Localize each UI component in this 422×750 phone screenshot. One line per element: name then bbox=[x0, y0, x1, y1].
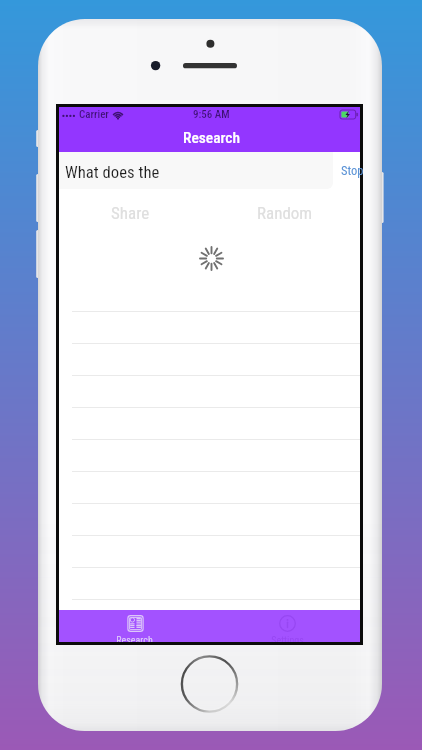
staticText: Random bbox=[257, 203, 313, 223]
button[interactable] bbox=[59, 535, 360, 567]
staticText: Settings bbox=[271, 635, 304, 642]
button[interactable] bbox=[59, 599, 360, 631]
button[interactable]: Stop bbox=[330, 152, 360, 189]
button[interactable] bbox=[59, 375, 360, 407]
button[interactable] bbox=[59, 471, 360, 503]
staticText: 9:56 AM bbox=[193, 108, 230, 121]
button[interactable]: Share bbox=[59, 189, 209, 236]
staticText: What does the bbox=[65, 163, 160, 183]
button[interactable] bbox=[59, 503, 360, 535]
staticText: Carrier bbox=[79, 108, 109, 121]
button[interactable] bbox=[59, 439, 360, 471]
button[interactable]: What does the bbox=[59, 152, 333, 189]
staticText: Research bbox=[183, 129, 241, 147]
staticText: Research bbox=[116, 635, 153, 642]
button[interactable]: Random bbox=[209, 189, 360, 236]
button[interactable]: Research bbox=[59, 610, 209, 642]
staticText: Stop bbox=[341, 163, 364, 178]
button[interactable] bbox=[59, 311, 360, 343]
staticText: Share bbox=[111, 203, 150, 223]
button[interactable] bbox=[59, 567, 360, 599]
button[interactable] bbox=[59, 343, 360, 375]
button[interactable] bbox=[59, 407, 360, 439]
